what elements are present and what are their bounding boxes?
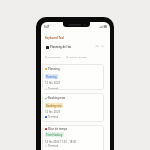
staticText: Booking now — [46, 104, 62, 107]
staticText: Booking now — [48, 96, 66, 100]
button[interactable]: Planning — [42, 64, 104, 90]
button[interactable]: Rechercher — [45, 55, 61, 58]
staticText: Terminé — [48, 144, 59, 148]
staticText: 14 fév. 2023 — [45, 81, 60, 85]
staticText: Planning de l'an — [50, 45, 72, 49]
staticText: 14 fév 2023 17:30 - 18:30 — [45, 140, 77, 144]
staticText: Ajouter un filtre — [69, 55, 87, 58]
staticText: Planning — [48, 67, 60, 71]
staticText: Planning — [46, 75, 57, 78]
staticText: 9:41 — [44, 25, 50, 29]
staticText: Rechercher — [48, 55, 61, 58]
staticText: Terminé — [48, 115, 59, 119]
staticText: 14 fév. 2023 — [45, 110, 60, 114]
button[interactable]: Booking now — [42, 93, 104, 122]
button[interactable]: Mise de temps — [42, 125, 104, 150]
staticText: Keyboard Tool — [45, 36, 64, 40]
staticText: Mise de temps — [48, 127, 68, 131]
button[interactable]: More options — [95, 44, 107, 48]
staticText: Terminé — [48, 87, 59, 90]
staticText: Time Hacking — [46, 133, 63, 136]
button[interactable]: Planning de l'an — [46, 45, 72, 49]
button[interactable]: Ajouter un filtre — [66, 55, 87, 58]
other: Status icons — [99, 25, 108, 28]
